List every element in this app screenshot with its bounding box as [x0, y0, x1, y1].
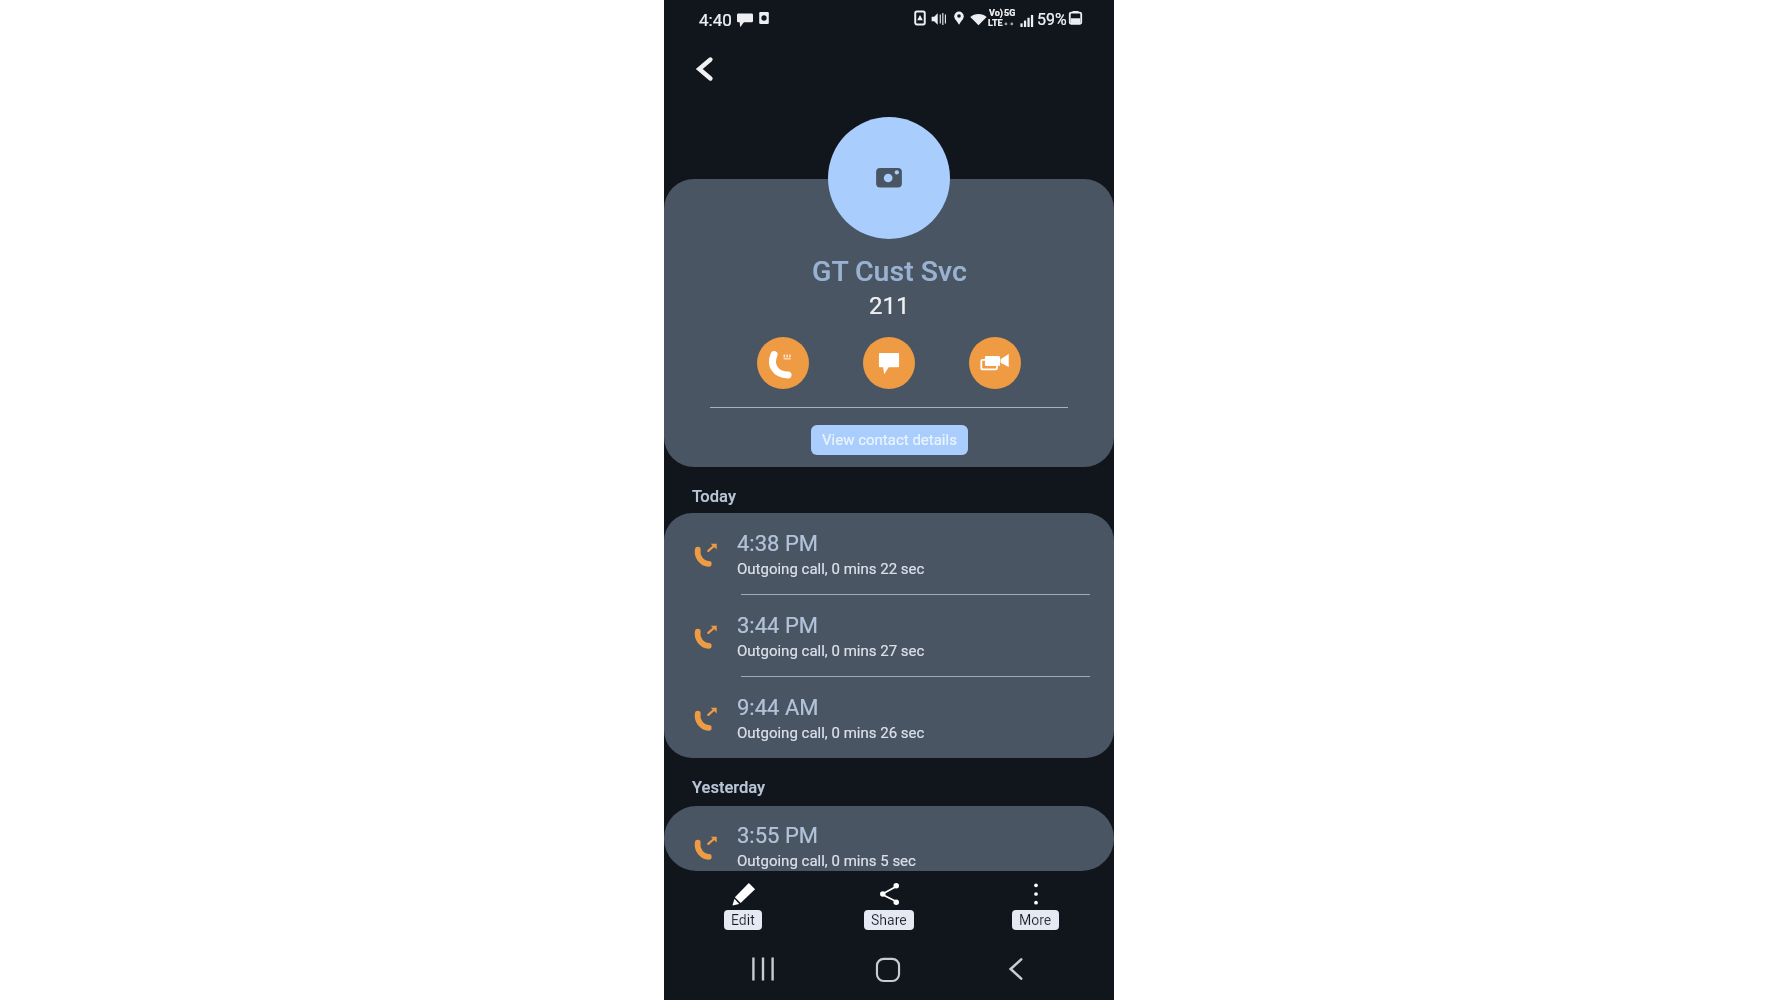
- button[interactable]: 9:44 AM: [664, 677, 1114, 758]
- staticText: Outgoing call, 0 mins 22 sec: [737, 560, 925, 578]
- staticText: Outgoing call, 0 mins 27 sec: [737, 642, 925, 660]
- staticText: 59%: [1037, 10, 1067, 29]
- staticText: 3:55 PM: [737, 823, 818, 849]
- staticText: Edit: [731, 912, 755, 928]
- staticText: 4:40: [699, 10, 732, 30]
- button[interactable]: Edit: [703, 876, 783, 936]
- staticText: More: [1019, 912, 1052, 928]
- button[interactable]: Share: [849, 876, 929, 936]
- button[interactable]: Home: [864, 945, 912, 993]
- button[interactable]: Recents: [739, 945, 787, 993]
- button[interactable]: More: [995, 876, 1075, 936]
- staticText: 4:38 PM: [737, 531, 818, 557]
- staticText: View contact details: [822, 431, 957, 449]
- button[interactable]: 3:44 PM: [664, 595, 1114, 677]
- staticText: 5G: [1004, 8, 1016, 19]
- staticText: Outgoing call, 0 mins 5 sec: [737, 852, 916, 870]
- button[interactable]: Back: [688, 52, 722, 86]
- button[interactable]: Call: [757, 337, 809, 389]
- button[interactable]: Video call: [969, 337, 1021, 389]
- button[interactable]: Change photo: [828, 117, 950, 239]
- button[interactable]: Message: [863, 337, 915, 389]
- staticText: Outgoing call, 0 mins 26 sec: [737, 724, 925, 742]
- staticText: Today: [692, 487, 736, 506]
- button[interactable]: View contact details: [811, 425, 968, 455]
- staticText: Vo): [989, 8, 1003, 19]
- staticText: 9:44 AM: [737, 695, 819, 721]
- staticText: Yesterday: [692, 778, 766, 797]
- staticText: 3:44 PM: [737, 613, 818, 639]
- button[interactable]: 3:55 PM: [664, 814, 1114, 871]
- staticText: LTE: [988, 18, 1003, 29]
- button[interactable]: 4:38 PM: [664, 513, 1114, 595]
- staticText: Share: [871, 912, 907, 928]
- staticText: GT Cust Svc: [812, 255, 967, 288]
- button[interactable]: Back: [991, 945, 1039, 993]
- staticText: 211: [869, 292, 910, 320]
